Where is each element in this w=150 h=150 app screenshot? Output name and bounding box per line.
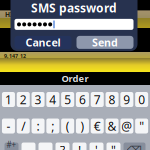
staticText: 9	[123, 91, 130, 107]
staticText: &	[107, 118, 116, 134]
staticText: Cancel	[25, 35, 60, 49]
button[interactable]: "	[106, 142, 120, 150]
staticText: SMS password	[31, 0, 117, 16]
staticText: !	[78, 142, 81, 150]
staticText: 5	[64, 91, 71, 107]
button[interactable]: Cancel	[14, 36, 71, 49]
button[interactable]: @	[120, 118, 133, 133]
button[interactable]: ;	[46, 118, 59, 133]
button[interactable]: !	[72, 142, 86, 150]
staticText: ⌫	[127, 144, 142, 150]
button[interactable]: "	[135, 118, 148, 133]
staticText: 2	[20, 91, 27, 107]
staticText: '	[95, 142, 98, 150]
button[interactable]: :	[32, 118, 45, 133]
staticText: /	[21, 118, 25, 134]
staticText: "	[111, 142, 116, 150]
button[interactable]: ⌫	[123, 142, 145, 150]
staticText: 1	[5, 91, 12, 107]
button[interactable]: 6	[76, 92, 89, 107]
button[interactable]: 7	[91, 92, 104, 107]
button[interactable]: 4	[46, 92, 59, 107]
staticText: "	[139, 118, 144, 134]
button[interactable]: .	[21, 142, 35, 150]
button[interactable]: 3	[32, 92, 45, 107]
button[interactable]: &	[105, 118, 118, 133]
button[interactable]: #+=	[4, 142, 18, 150]
staticText: 7	[94, 91, 101, 107]
staticText: HI	[5, 10, 13, 19]
staticText: 3	[35, 91, 42, 107]
staticText: 6	[79, 91, 86, 107]
button[interactable]: 9	[120, 92, 133, 107]
button[interactable]: 1	[2, 92, 15, 107]
staticText: €	[94, 118, 101, 134]
button[interactable]: )	[76, 118, 89, 133]
staticText: ;	[51, 118, 54, 134]
button[interactable]: €	[91, 118, 104, 133]
button[interactable]: (	[61, 118, 74, 133]
button[interactable]: 5	[61, 92, 74, 107]
staticText: 4	[49, 91, 56, 107]
staticText: :	[37, 118, 40, 134]
staticText: Order	[61, 72, 88, 85]
button[interactable]: ,	[38, 142, 52, 150]
button[interactable]: -	[2, 118, 15, 133]
staticText: 8	[108, 91, 115, 107]
button[interactable]: 2	[17, 92, 30, 107]
staticText: ?	[60, 142, 65, 150]
button[interactable]: 8	[105, 92, 118, 107]
staticText: .	[27, 142, 30, 150]
button[interactable]: /	[17, 118, 30, 133]
staticText: )	[80, 118, 84, 134]
staticText: @	[121, 118, 132, 134]
staticText: (	[66, 118, 70, 134]
staticText: #+=	[6, 139, 16, 150]
button[interactable]: ?	[55, 142, 69, 150]
button[interactable]: Send	[76, 36, 133, 49]
staticText: 0	[138, 91, 145, 107]
button[interactable]: '	[89, 142, 103, 150]
staticText: ,	[44, 142, 47, 150]
staticText: Send	[92, 35, 118, 49]
staticText: -	[6, 118, 10, 134]
staticText: 9,147 12	[4, 52, 26, 60]
button[interactable]: 0	[135, 92, 148, 107]
